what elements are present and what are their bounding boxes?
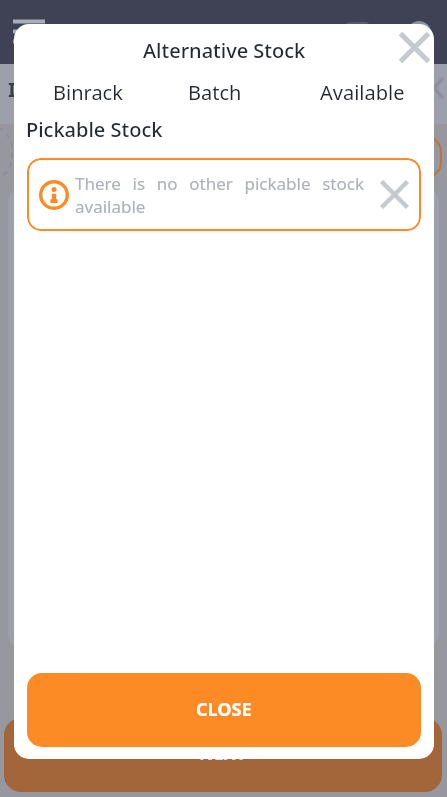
staticText: Batch — [188, 79, 242, 106]
staticText: Pickable Stock — [26, 116, 163, 143]
staticText: Alternative Stock — [143, 37, 306, 64]
staticText: NEXT — [199, 741, 247, 766]
button[interactable]: Available — [320, 79, 405, 106]
button[interactable]: CLOSE — [27, 673, 421, 747]
button[interactable]: Dismiss alert — [374, 174, 415, 215]
staticText: Binrack — [53, 79, 123, 106]
staticText: Available — [320, 79, 405, 106]
staticText: CLOSE — [196, 697, 252, 722]
staticText: There is no other pickable stock availab… — [75, 172, 364, 218]
button[interactable]: Batch — [188, 79, 242, 106]
button[interactable]: Binrack — [53, 79, 123, 106]
button[interactable]: Close dialog — [393, 26, 434, 69]
staticText: Item Details — [8, 76, 131, 103]
